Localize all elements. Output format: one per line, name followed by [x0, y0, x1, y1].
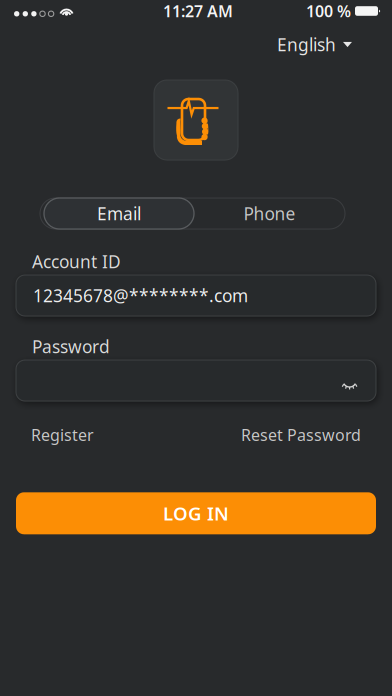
- staticText: English: [277, 33, 336, 56]
- staticText: Register: [31, 424, 94, 445]
- button[interactable]: LOG IN: [16, 492, 376, 534]
- staticText: Email: [97, 202, 141, 225]
- staticText: LOG IN: [163, 501, 229, 526]
- staticText: 100 %: [306, 0, 351, 22]
- staticText: Password: [32, 335, 110, 358]
- button[interactable]: Show password: [332, 367, 368, 394]
- button[interactable]: Email: [44, 198, 194, 229]
- button[interactable]: Reset Password: [241, 420, 361, 449]
- button[interactable]: Register: [31, 420, 94, 449]
- button[interactable]: English: [267, 26, 362, 63]
- staticText: Account ID: [32, 250, 121, 273]
- staticText: 12345678@********.com: [33, 284, 248, 307]
- button[interactable]: Phone: [194, 198, 345, 229]
- staticText: 11:27 AM: [163, 0, 233, 22]
- staticText: Phone: [243, 202, 295, 225]
- staticText: Reset Password: [241, 424, 361, 445]
